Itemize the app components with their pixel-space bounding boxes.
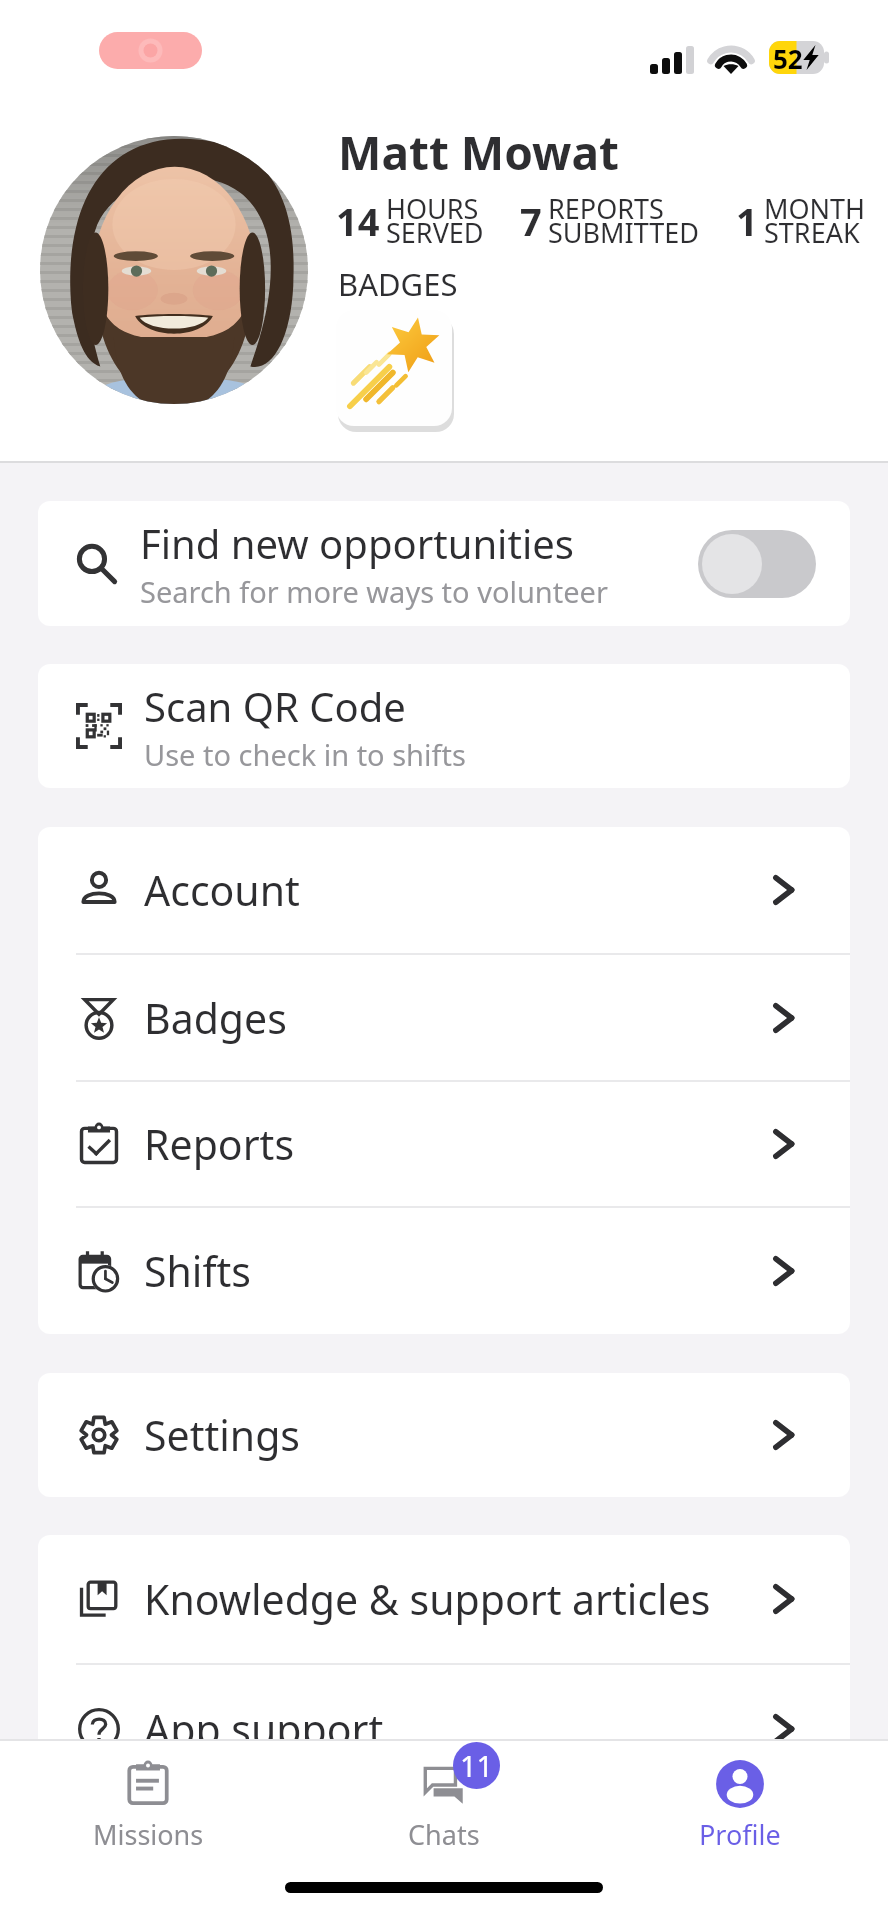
staticText: 11: [460, 1746, 494, 1785]
staticText: Chats: [408, 1816, 480, 1853]
button[interactable]: Account: [38, 827, 850, 953]
button[interactable]: App support: [38, 1665, 850, 1793]
staticText: Knowledge & support articles: [144, 1571, 765, 1627]
staticText: Search for more ways to volunteer: [140, 572, 608, 611]
staticText: Matt Mowat: [338, 121, 619, 184]
staticText: BADGES: [338, 263, 458, 305]
button[interactable]: Badges: [38, 955, 850, 1080]
staticText: HOURS SERVED: [386, 190, 484, 251]
staticText: MONTH STREAK: [764, 190, 866, 251]
staticText: Scan QR Code: [144, 679, 406, 733]
button[interactable]: Chats: [296, 1741, 592, 1853]
staticText: Use to check in to shifts: [144, 735, 466, 774]
staticText: Missions: [93, 1816, 204, 1853]
button[interactable]: Settings: [38, 1373, 850, 1497]
staticText: Account: [144, 862, 765, 918]
staticText: App support: [144, 1701, 765, 1757]
button[interactable]: Shooting star badge: [336, 310, 452, 426]
button[interactable]: Profile photo of Matt Mowat: [40, 136, 308, 404]
button[interactable]: Profile: [592, 1741, 888, 1853]
staticText: 52: [773, 41, 803, 74]
button[interactable]: Find new opportunities: [38, 501, 850, 626]
button[interactable]: Scan QR Code: [38, 664, 850, 788]
button[interactable]: Find new opportunities toggle: [698, 530, 816, 598]
button[interactable]: Shifts: [38, 1208, 850, 1334]
staticText: Reports: [144, 1116, 765, 1172]
button[interactable]: Reports: [38, 1082, 850, 1206]
button[interactable]: Missions: [0, 1741, 296, 1853]
staticText: 1: [736, 195, 758, 247]
staticText: Profile: [699, 1816, 781, 1853]
staticText: 14: [336, 195, 380, 247]
staticText: Settings: [144, 1407, 765, 1463]
staticText: 7: [520, 195, 542, 247]
staticText: Find new opportunities: [140, 516, 574, 570]
button[interactable]: Knowledge & support articles: [38, 1535, 850, 1663]
staticText: REPORTS SUBMITTED: [548, 190, 700, 251]
staticText: Shifts: [144, 1243, 765, 1299]
staticText: Badges: [144, 990, 765, 1046]
